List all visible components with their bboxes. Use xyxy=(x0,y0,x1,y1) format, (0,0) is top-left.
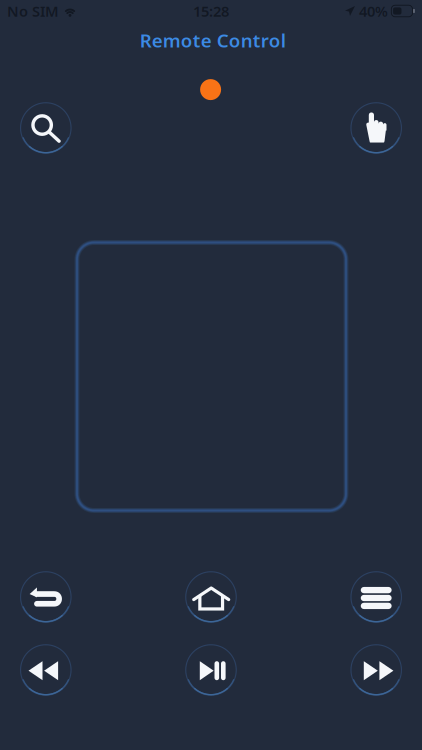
button[interactable]: Touchpad xyxy=(351,103,401,153)
button[interactable]: Menu xyxy=(351,572,401,622)
staticText: 40% xyxy=(359,1,388,21)
staticText: 15:28 xyxy=(193,1,229,21)
button[interactable]: Back xyxy=(20,572,71,622)
button[interactable]: Rewind xyxy=(20,645,71,695)
button[interactable]: Fast Forward xyxy=(351,645,401,695)
staticText: No SIM xyxy=(7,1,59,21)
button[interactable]: Search xyxy=(20,103,71,153)
button[interactable]: Play Pause xyxy=(186,645,236,695)
button[interactable]: Home xyxy=(186,572,236,622)
staticText: Remote Control xyxy=(140,28,286,53)
